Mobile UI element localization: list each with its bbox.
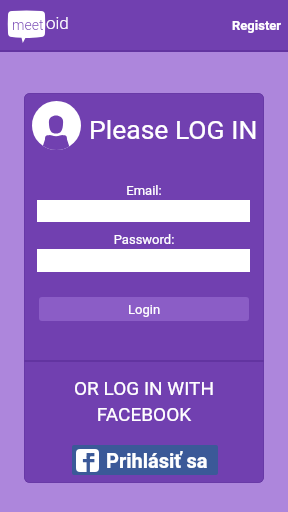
staticText: OR LOG IN WITH FACEBOOK [46,377,242,425]
staticText: Please LOG IN [89,114,258,145]
staticText: oid [46,13,69,33]
button[interactable]: Register [222,8,288,43]
staticText: Register [232,18,282,33]
staticText: Password: [24,232,264,247]
staticText: Prihlásiť sa [106,449,208,472]
staticText: Login [128,302,161,317]
staticText: meet [12,17,44,33]
button[interactable]: Prihlásiť sa [72,445,218,475]
staticText: Email: [24,183,264,198]
button[interactable]: Login [39,297,249,321]
